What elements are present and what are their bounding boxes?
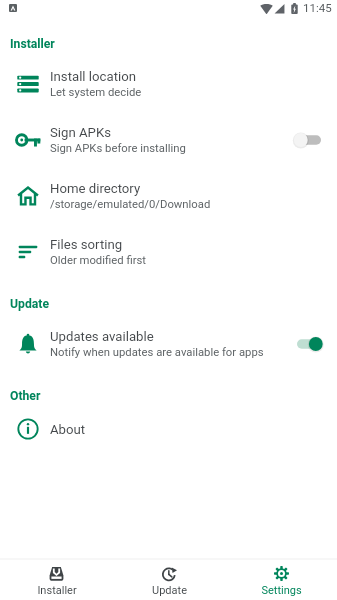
- staticText: About: [50, 422, 86, 437]
- staticText: Sign APKs before installing: [50, 142, 186, 155]
- staticText: Notify when updates are available for ap…: [50, 346, 264, 359]
- button[interactable]: Toggle off: [294, 130, 324, 150]
- staticText: Let system decide: [50, 86, 142, 99]
- staticText: Older modified first: [50, 254, 147, 267]
- button[interactable]: Update: [113, 560, 225, 600]
- staticText: Home directory: [50, 181, 141, 196]
- staticText: Install location: [50, 69, 136, 84]
- staticText: Settings: [261, 584, 302, 597]
- button[interactable]: Files sorting: [0, 224, 337, 280]
- button[interactable]: Installer: [0, 560, 113, 600]
- button[interactable]: Toggle on: [294, 334, 324, 354]
- staticText: Update: [152, 584, 187, 597]
- button[interactable]: Home directory: [0, 168, 337, 224]
- button[interactable]: About: [0, 408, 337, 450]
- button[interactable]: Updates available: [0, 316, 337, 372]
- staticText: Update: [10, 297, 49, 311]
- staticText: Other: [10, 389, 41, 403]
- staticText: /storage/emulated/0/Download: [50, 198, 211, 211]
- staticText: Updates available: [50, 329, 154, 344]
- staticText: Files sorting: [50, 237, 123, 252]
- button[interactable]: Settings: [225, 560, 337, 600]
- staticText: Installer: [10, 37, 55, 51]
- staticText: 11:45: [303, 1, 332, 14]
- button[interactable]: Sign APKs: [0, 112, 337, 168]
- staticText: Sign APKs: [50, 125, 111, 140]
- staticText: Installer: [37, 584, 77, 597]
- button[interactable]: Install location: [0, 56, 337, 112]
